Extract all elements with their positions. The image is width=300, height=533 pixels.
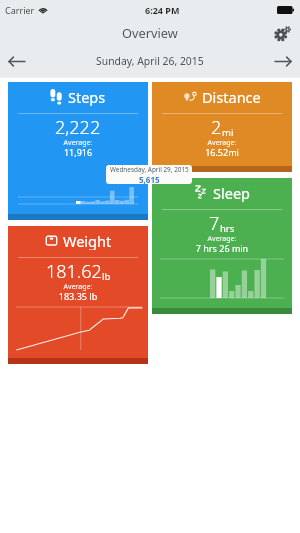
staticText: Overview <box>122 24 178 41</box>
staticText: 2 <box>211 115 222 140</box>
button[interactable]: Sleep card <box>152 178 292 314</box>
staticText: 11,916 <box>8 146 148 158</box>
staticText: mi <box>222 126 234 139</box>
button[interactable]: Previous day <box>4 48 30 74</box>
staticText: Wednesday, April 29, 2015 <box>110 165 189 174</box>
button[interactable]: Steps card <box>8 82 148 220</box>
staticText: Average: <box>152 234 292 244</box>
staticText: Average: <box>8 138 148 148</box>
staticText: 5,615 <box>139 174 160 184</box>
button[interactable]: Weight card <box>8 226 148 364</box>
button[interactable]: Distance card <box>152 82 292 172</box>
staticText: Weight <box>63 231 112 250</box>
staticText: Sunday, April 26, 2015 <box>96 54 204 68</box>
staticText: Distance <box>202 87 261 106</box>
staticText: hrs <box>220 222 235 235</box>
staticText: Average: <box>8 282 148 292</box>
staticText: 181.62 <box>46 259 102 284</box>
staticText: 16.52mi <box>152 146 292 158</box>
staticText: Steps <box>68 87 106 106</box>
button[interactable]: Next day <box>270 48 296 74</box>
staticText: Sleep <box>213 183 250 202</box>
staticText: 183.35 lb <box>8 290 148 302</box>
staticText: lb <box>102 270 111 283</box>
staticText: Carrier <box>5 4 35 16</box>
staticText: 7 <box>209 211 220 236</box>
staticText: 7 hrs 26 min <box>152 242 292 254</box>
staticText: Average: <box>152 138 292 148</box>
staticText: 6:24 PM <box>145 4 180 16</box>
button[interactable]: Settings <box>270 21 294 45</box>
staticText: 2,222 <box>55 115 101 140</box>
